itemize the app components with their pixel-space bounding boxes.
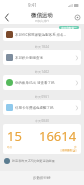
button[interactable]: 今日步数第一 — [59, 26, 79, 29]
staticText: 昨天 14:02 — [35, 70, 49, 74]
button[interactable]: 15 — [3, 124, 81, 154]
button[interactable]: 本月积分明细查询 — [3, 50, 81, 65]
button[interactable]: 步数排行榜 — [0, 171, 84, 185]
button[interactable]: More options — [71, 11, 84, 24]
staticText: 15 — [7, 127, 22, 145]
staticText: 张克喜昨天 2万比您更运动能量 — [12, 159, 80, 163]
staticText: 本月积分明细查询 — [15, 56, 76, 60]
staticText: 信用卡年费减免提醒了吗 — [15, 106, 76, 110]
staticText: 已加入排行 — [35, 19, 49, 23]
staticText: 微信运动 — [31, 12, 53, 19]
button[interactable]: Back — [0, 11, 13, 24]
staticText: 9:41 — [28, 2, 37, 8]
staticText: 本月你C和陈家银边昵客系 排名… — [15, 32, 78, 37]
button[interactable]: 您的账单已出 请查看了吗 — [3, 75, 81, 90]
staticText: 步 — [74, 145, 77, 148]
staticText: 您的账单已出 请查看了吗 — [15, 80, 76, 85]
staticText: 昨天 18:24 — [35, 45, 49, 49]
button[interactable]: 今日排名 — [60, 149, 77, 152]
staticText: 步数排行榜 — [33, 176, 51, 180]
staticText: 今日步数第一 — [61, 26, 77, 29]
button[interactable]: 信用卡年费减免提醒了吗 — [3, 100, 81, 115]
staticText: 今天 08:30 — [35, 119, 49, 123]
staticText: 名次 — [7, 145, 13, 148]
staticText: 昨天 09:51 — [35, 95, 49, 99]
button[interactable]: 本月你C和陈家银边昵客系 排名… — [3, 28, 81, 41]
button[interactable]: 张克喜昨天 2万比您更运动能量 — [0, 157, 84, 165]
staticText: 16614 — [39, 127, 77, 145]
staticText: 今日排名 — [62, 149, 72, 152]
